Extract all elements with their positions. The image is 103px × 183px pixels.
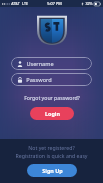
staticText: 5:07 PM: [47, 1, 62, 6]
button[interactable]: Password: [11, 73, 92, 86]
staticText: AT&T: [11, 1, 20, 6]
staticText: Password: [26, 76, 52, 84]
button[interactable]: Forgot your password?: [21, 93, 83, 102]
staticText: Not yet registered?: [28, 144, 75, 151]
staticText: Registration is quick and easy: [15, 152, 88, 159]
staticText: Sign Up: [42, 167, 63, 174]
staticText: LTE: [22, 1, 28, 6]
staticText: 32%: [85, 1, 93, 6]
button[interactable]: Sign Up: [27, 164, 77, 177]
staticText: Username: [26, 60, 54, 68]
staticText: Forgot your password?: [24, 94, 80, 101]
staticText: Login: [45, 110, 60, 117]
button[interactable]: Username: [11, 57, 92, 70]
button[interactable]: Login: [30, 107, 74, 120]
